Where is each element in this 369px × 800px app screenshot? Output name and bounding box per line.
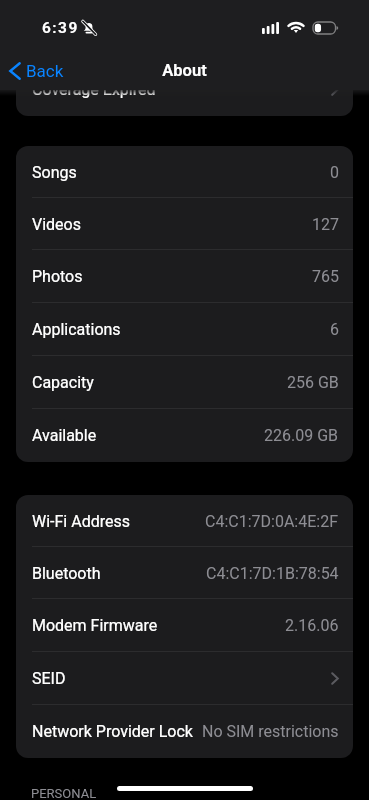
- staticText: 6:39: [42, 19, 79, 37]
- button[interactable]: Applications: [16, 303, 353, 356]
- staticText: Wi-Fi Address: [32, 512, 130, 531]
- button[interactable]: Songs: [16, 146, 353, 198]
- button[interactable]: Photos: [16, 250, 353, 303]
- staticText: Applications: [32, 320, 121, 339]
- button[interactable]: Wi-Fi Address: [16, 495, 353, 547]
- staticText: 765: [312, 267, 339, 286]
- staticText: PERSONAL: [31, 786, 97, 800]
- staticText: Bluetooth: [32, 564, 101, 583]
- staticText: No SIM restrictions: [202, 722, 339, 741]
- staticText: 2.16.06: [285, 616, 339, 635]
- button[interactable]: Network Provider Lock: [16, 705, 353, 758]
- staticText: SEID: [32, 669, 66, 688]
- staticText: Available: [32, 426, 97, 445]
- staticText: 127: [312, 215, 339, 234]
- staticText: Modem Firmware: [32, 616, 158, 635]
- staticText: Capacity: [32, 373, 94, 392]
- staticText: C4:C1:7D:1B:78:54: [206, 564, 339, 583]
- staticText: 6: [330, 320, 339, 339]
- staticText: About: [162, 61, 207, 80]
- staticText: Photos: [32, 267, 83, 286]
- button[interactable]: SEID: [16, 652, 353, 705]
- button[interactable]: Available: [16, 409, 353, 462]
- staticText: Videos: [32, 215, 81, 234]
- button[interactable]: Videos: [16, 198, 353, 250]
- button[interactable]: Capacity: [16, 356, 353, 409]
- staticText: Coverage Expired: [32, 80, 156, 99]
- staticText: Back: [26, 61, 64, 81]
- staticText: 226.09 GB: [264, 426, 339, 445]
- button[interactable]: Back: [0, 57, 72, 85]
- staticText: 0: [330, 163, 339, 182]
- staticText: Songs: [32, 163, 77, 182]
- staticText: Network Provider Lock: [32, 722, 193, 741]
- button[interactable]: Coverage Expired: [16, 63, 353, 116]
- staticText: 256 GB: [287, 373, 339, 392]
- button[interactable]: Bluetooth: [16, 547, 353, 599]
- staticText: C4:C1:7D:0A:4E:2F: [205, 512, 339, 531]
- button[interactable]: Modem Firmware: [16, 599, 353, 652]
